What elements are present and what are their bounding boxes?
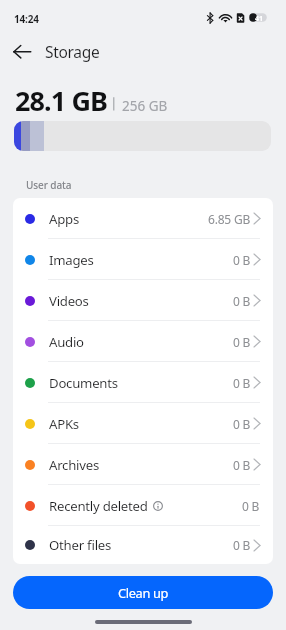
- staticText: Recently deleted: [49, 497, 148, 515]
- staticText: 256 GB: [122, 97, 168, 115]
- staticText: 0 B: [233, 537, 251, 553]
- staticText: 6.85 GB: [208, 211, 251, 227]
- staticText: Other files: [49, 536, 112, 554]
- staticText: Storage: [45, 41, 100, 62]
- staticText: 0 B: [233, 416, 251, 432]
- staticText: 0 B: [233, 293, 251, 309]
- button[interactable]: Other files: [13, 526, 273, 564]
- staticText: Documents: [49, 374, 118, 392]
- staticText: 41: [255, 14, 264, 24]
- staticText: Archives: [49, 456, 99, 474]
- staticText: Audio: [49, 333, 84, 351]
- staticText: Images: [49, 251, 94, 269]
- staticText: 28.1 GB: [15, 82, 108, 119]
- button[interactable]: Back: [6, 36, 38, 68]
- staticText: 0 B: [233, 334, 251, 350]
- button[interactable]: Documents: [13, 362, 273, 403]
- button[interactable]: Videos: [13, 280, 273, 321]
- button[interactable]: Clean up: [13, 576, 273, 609]
- button[interactable]: Audio: [13, 321, 273, 362]
- button[interactable]: Recently deleted: [13, 485, 273, 526]
- staticText: User data: [26, 178, 72, 192]
- staticText: 0 B: [242, 498, 260, 514]
- button[interactable]: Apps: [13, 198, 273, 239]
- staticText: 0 B: [233, 375, 251, 391]
- staticText: APKs: [49, 415, 79, 433]
- staticText: 0 B: [233, 252, 251, 268]
- button[interactable]: Images: [13, 239, 273, 280]
- staticText: Apps: [49, 210, 79, 228]
- staticText: Clean up: [118, 584, 168, 601]
- staticText: 0 B: [233, 457, 251, 473]
- button[interactable]: Archives: [13, 444, 273, 485]
- staticText: 14:24: [14, 12, 39, 26]
- button[interactable]: APKs: [13, 403, 273, 444]
- staticText: Videos: [49, 292, 89, 310]
